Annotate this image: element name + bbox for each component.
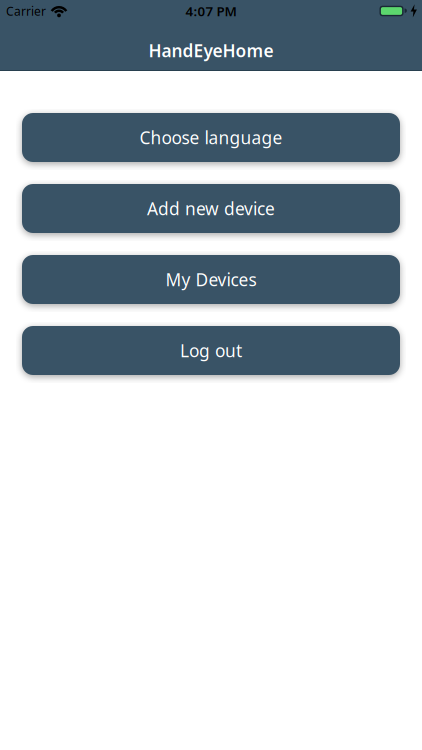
staticText: Log out — [180, 339, 242, 362]
staticText: 4:07 PM — [185, 2, 236, 20]
staticText: Choose language — [139, 126, 282, 149]
button[interactable]: Add new device — [22, 184, 400, 233]
staticText: Add new device — [147, 197, 275, 220]
staticText: My Devices — [165, 268, 256, 291]
staticText: HandEyeHome — [148, 39, 273, 62]
button[interactable]: My Devices — [22, 255, 400, 304]
button[interactable]: Choose language — [22, 113, 400, 162]
button[interactable]: Log out — [22, 326, 400, 375]
staticText: Carrier — [6, 3, 46, 19]
